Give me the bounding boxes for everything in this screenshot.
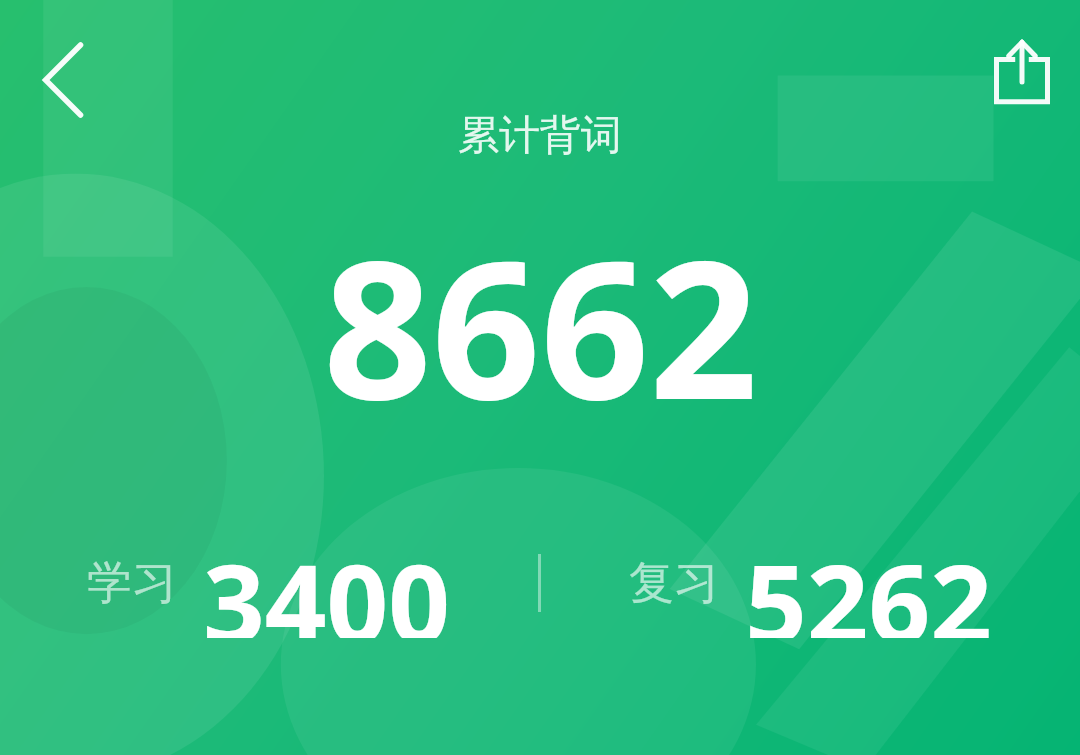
button[interactable]: 学习 (0, 528, 538, 638)
button[interactable]: Share (976, 26, 1068, 118)
button[interactable]: 复习 (541, 528, 1080, 638)
staticText: 复习 (629, 555, 719, 612)
staticText: 累计背词 (458, 110, 622, 162)
staticText: 8662 (323, 196, 758, 455)
staticText: 学习 (87, 555, 177, 612)
button[interactable]: Back (20, 36, 108, 124)
staticText: 3400 (203, 528, 451, 638)
staticText: 5262 (745, 528, 993, 638)
